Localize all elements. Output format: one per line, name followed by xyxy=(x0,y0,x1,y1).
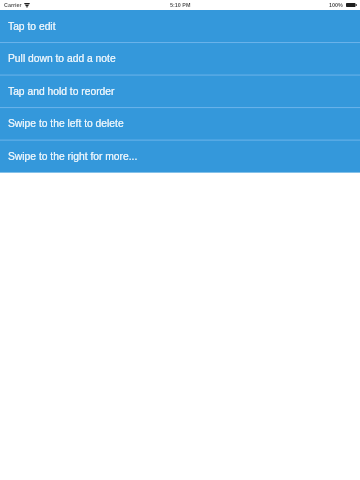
button[interactable]: Pull down to add a note xyxy=(0,43,360,76)
staticText: Carrier xyxy=(4,2,22,8)
button[interactable]: Swipe to the left to delete xyxy=(0,108,360,141)
button[interactable]: Tap and hold to reorder xyxy=(0,75,360,108)
button[interactable]: Swipe to the right for more... xyxy=(0,140,360,173)
staticText: Tap to edit xyxy=(8,21,56,33)
other: Wi-Fi signal strength xyxy=(24,3,30,8)
staticText: Swipe to the right for more... xyxy=(8,151,138,163)
other: Battery full xyxy=(346,3,357,7)
button[interactable]: Tap to edit xyxy=(0,10,360,43)
staticText: Tap and hold to reorder xyxy=(8,86,115,98)
staticText: Swipe to the left to delete xyxy=(8,118,124,130)
staticText: Pull down to add a note xyxy=(8,53,116,65)
staticText: 100% xyxy=(329,2,343,8)
staticText: 5:10 PM xyxy=(170,2,191,8)
